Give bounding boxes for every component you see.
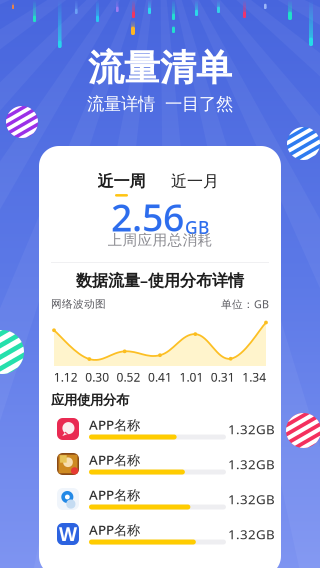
button[interactable]: APP名称 — [57, 453, 275, 475]
staticText: APP名称 — [89, 451, 140, 468]
staticText: 0.41 — [148, 369, 172, 385]
button[interactable]: APP名称 — [57, 418, 275, 440]
button[interactable]: APP名称 — [57, 488, 275, 510]
staticText: 1.32GB — [228, 525, 275, 543]
staticText: 0.30 — [85, 369, 109, 385]
staticText: 上周应用总消耗 — [107, 231, 212, 249]
staticText: 网络波动图 — [51, 297, 106, 310]
staticText: 流量详情 一目了然 — [87, 93, 233, 115]
staticText: 1.32GB — [228, 455, 275, 473]
button[interactable]: W — [57, 523, 275, 545]
staticText: 1.32GB — [228, 490, 275, 508]
staticText: 0.52 — [117, 369, 141, 385]
staticText: 0.31 — [211, 369, 235, 385]
staticText: 流量清单 — [88, 46, 232, 90]
staticText: APP名称 — [89, 521, 140, 538]
staticText: 1.34 — [242, 369, 266, 385]
staticText: 数据流量–使用分布详情 — [76, 269, 244, 291]
button[interactable]: 近一月 — [155, 170, 235, 198]
staticText: W — [59, 522, 77, 546]
staticText: 近一月 — [171, 171, 219, 191]
staticText: 1.01 — [179, 369, 203, 385]
button[interactable]: 近一周 — [81, 170, 161, 198]
staticText: 2.56 — [111, 192, 184, 242]
staticText: APP名称 — [89, 416, 140, 433]
staticText: 1.12 — [54, 369, 78, 385]
staticText: 单位：GB — [221, 297, 269, 311]
staticText: 1.32GB — [228, 420, 275, 438]
staticText: 近一周 — [97, 171, 145, 191]
staticText: 应用使用分布 — [51, 392, 129, 408]
staticText: APP名称 — [89, 486, 140, 503]
staticText: GB — [185, 216, 209, 239]
